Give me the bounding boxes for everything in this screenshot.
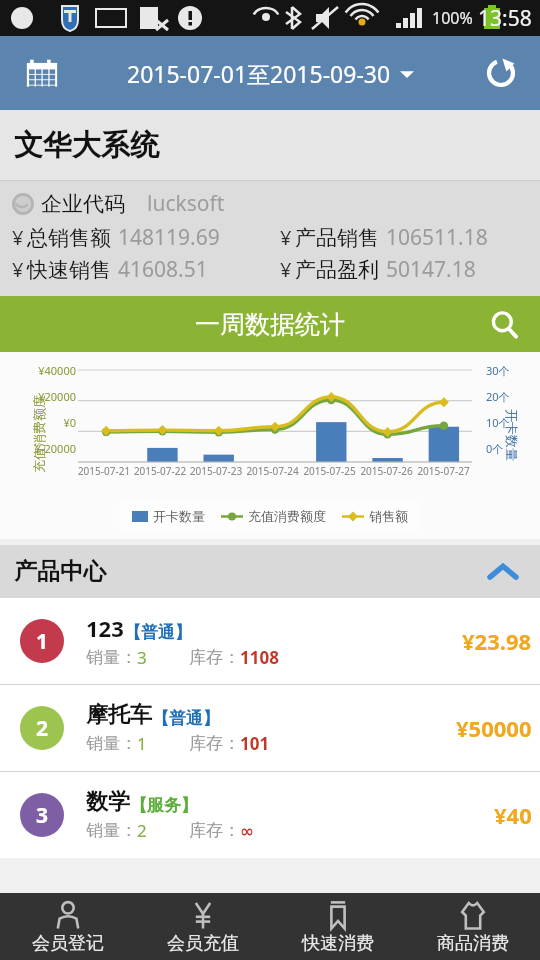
staticText: 1108 — [240, 646, 279, 669]
staticText: ¥23.98 — [462, 626, 532, 656]
button[interactable]: 一周数据统计 — [0, 296, 540, 352]
staticText: 20个 — [486, 389, 520, 404]
staticText: 123 — [86, 613, 124, 643]
staticText: 2015-07-26 — [358, 464, 415, 478]
staticText: 2 — [137, 819, 147, 842]
button[interactable]: Refresh — [474, 46, 528, 100]
staticText: 库存： — [189, 733, 240, 754]
button[interactable]: Select date range — [14, 45, 70, 101]
button[interactable]: 2 — [0, 685, 540, 771]
staticText: ¥40000 — [22, 363, 76, 378]
staticText: 企业代码 — [41, 191, 125, 217]
staticText: 30个 — [486, 363, 520, 378]
staticText: 快速销售 — [27, 257, 111, 283]
button[interactable]: 快速消费 — [270, 893, 405, 960]
button[interactable]: 3 — [0, 772, 540, 858]
staticText: 开卡数量 — [153, 508, 205, 524]
staticText: 充值消费额度 — [248, 508, 326, 524]
staticText: 文华大系统 — [14, 127, 159, 164]
staticText: 13:58 — [478, 4, 532, 33]
staticText: ¥0 — [22, 415, 76, 430]
staticText: 2015-07-25 — [301, 464, 358, 478]
staticText: 2015-07-22 — [132, 464, 188, 478]
button[interactable]: 会员登记 — [0, 893, 135, 960]
staticText: 一周数据统计 — [195, 309, 345, 340]
staticText: 2015-07-23 — [188, 464, 244, 478]
staticText: 总销售额 — [27, 225, 111, 251]
staticText: 销售额 — [369, 508, 408, 524]
staticText: ¥ — [12, 224, 24, 251]
staticText: ¥ — [12, 256, 24, 283]
staticText: 106511.18 — [386, 223, 488, 252]
staticText: 会员登记 — [32, 932, 104, 955]
staticText: 3 — [137, 646, 147, 669]
staticText: ¥50000 — [456, 713, 532, 743]
staticText: 100% — [432, 7, 473, 29]
staticText: 快速消费 — [302, 932, 374, 955]
staticText: 148119.69 — [118, 223, 220, 252]
staticText: lucksoft — [147, 189, 225, 218]
staticText: 1 — [137, 732, 147, 755]
button[interactable]: Search — [482, 302, 526, 346]
button[interactable]: 商品消费 — [405, 893, 540, 960]
staticText: 【服务】 — [130, 795, 198, 816]
staticText: 摩托车 — [86, 701, 152, 729]
staticText: 开卡数量 — [504, 409, 520, 461]
staticText: 商品消费 — [437, 932, 509, 955]
staticText: 2015-07-01至2015-09-30 — [127, 58, 391, 89]
button[interactable]: 1 — [0, 598, 540, 684]
staticText: 产品中心 — [14, 557, 106, 586]
staticText: 0个 — [486, 441, 520, 456]
staticText: 50147.18 — [386, 255, 476, 284]
button[interactable]: 产品中心 — [0, 545, 540, 598]
staticText: 2015-07-24 — [244, 464, 301, 478]
button[interactable]: 会员充值 — [135, 893, 270, 960]
staticText: 41608.51 — [118, 255, 208, 284]
staticText: 1 — [36, 627, 49, 656]
staticText: 2015-07-27 — [415, 464, 472, 478]
staticText: 【普通】 — [124, 622, 192, 643]
staticText: 产品销售 — [295, 225, 379, 251]
staticText: 库存： — [189, 647, 240, 668]
staticText: 101 — [240, 732, 270, 755]
staticText: 2015-07-21 — [76, 464, 132, 478]
staticText: 充值消费额度 — [31, 395, 47, 473]
staticText: ∞ — [240, 821, 255, 841]
staticText: 销量： — [86, 733, 137, 754]
staticText: ¥40 — [494, 800, 532, 830]
staticText: 数学 — [86, 788, 130, 816]
staticText: 销量： — [86, 647, 137, 668]
staticText: 会员充值 — [167, 932, 239, 955]
staticText: 3 — [36, 801, 49, 830]
staticText: 10个 — [486, 415, 520, 430]
staticText: ¥ — [280, 256, 292, 283]
staticText: 库存： — [189, 820, 240, 841]
button[interactable]: 2015-07-01至2015-09-30 — [127, 58, 414, 89]
staticText: 产品盈利 — [295, 257, 379, 283]
staticText: 【普通】 — [152, 708, 220, 729]
staticText: ¥-20000 — [22, 441, 76, 456]
staticText: 销量： — [86, 820, 137, 841]
staticText: ¥ — [280, 224, 292, 251]
staticText: 2 — [36, 714, 49, 743]
other: Collapse — [484, 553, 522, 591]
staticText: ¥20000 — [22, 389, 76, 404]
